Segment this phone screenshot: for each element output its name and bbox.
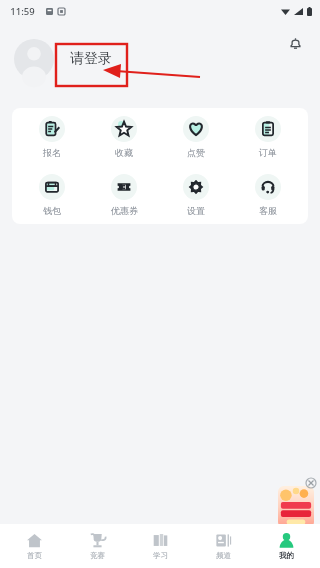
button[interactable]: 钱包 xyxy=(20,172,84,218)
staticText: 收藏 xyxy=(115,147,133,158)
staticText: 学习 xyxy=(153,551,168,560)
button[interactable]: 学习 xyxy=(131,528,189,564)
button[interactable]: 客服 xyxy=(236,172,300,218)
button[interactable]: Close ad xyxy=(306,478,316,488)
button[interactable]: 订单 xyxy=(236,114,300,160)
staticText: 报名 xyxy=(43,147,61,158)
staticText: 11:59 xyxy=(10,5,35,18)
button[interactable]: Promotion xyxy=(278,486,314,528)
button[interactable]: 报名 xyxy=(20,114,84,160)
staticText: 订单 xyxy=(259,147,277,158)
staticText: 钱包 xyxy=(43,205,61,216)
staticText: 请登录 xyxy=(70,50,112,68)
button[interactable]: 频道 xyxy=(194,528,252,564)
staticText: 客服 xyxy=(259,205,277,216)
button[interactable]: 优惠券 xyxy=(92,172,156,218)
staticText: 竞赛 xyxy=(90,551,105,560)
staticText: 设置 xyxy=(187,205,205,216)
staticText: 首页 xyxy=(27,551,42,560)
staticText: 我的 xyxy=(279,551,294,560)
staticText: 频道 xyxy=(216,551,231,560)
button[interactable]: 点赞 xyxy=(164,114,228,160)
staticText: 优惠券 xyxy=(111,205,138,216)
button[interactable]: 首页 xyxy=(5,528,63,564)
button[interactable]: 设置 xyxy=(164,172,228,218)
button[interactable]: Notifications xyxy=(280,28,310,58)
staticText: 点赞 xyxy=(187,147,205,158)
button[interactable]: 请登录 xyxy=(14,39,112,79)
button[interactable]: 收藏 xyxy=(92,114,156,160)
button[interactable]: 竞赛 xyxy=(68,528,126,564)
button[interactable]: 我的 xyxy=(257,528,315,564)
